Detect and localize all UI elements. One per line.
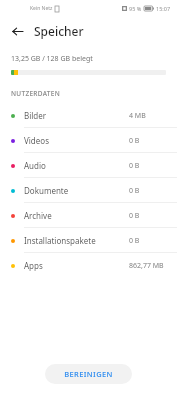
staticText: 4 MB xyxy=(129,111,169,121)
staticText: BEREINIGEN xyxy=(64,369,113,379)
staticText: 13,25 GB / 128 GB belegt xyxy=(11,54,93,64)
staticText: 0 B xyxy=(129,136,169,146)
button[interactable]: Bilder xyxy=(0,103,177,128)
staticText: NUTZERDATEN xyxy=(11,89,60,98)
button[interactable]: Back xyxy=(7,21,27,41)
button[interactable]: Audio xyxy=(0,153,177,178)
staticText: Apps xyxy=(24,260,43,271)
staticText: 95 % xyxy=(129,5,142,12)
staticText: Audio xyxy=(24,160,46,171)
staticText: Archive xyxy=(24,210,52,221)
staticText: 0 B xyxy=(129,211,169,221)
button[interactable]: BEREINIGEN xyxy=(45,364,132,384)
staticText: Videos xyxy=(24,135,49,146)
button[interactable]: Archive xyxy=(0,203,177,228)
staticText: 0 B xyxy=(129,186,169,196)
button[interactable]: Installationspakete xyxy=(0,228,177,253)
staticText: 15:07 xyxy=(156,5,171,12)
staticText: 0 B xyxy=(129,236,169,246)
staticText: Dokumente xyxy=(24,185,69,196)
staticText: 0 B xyxy=(129,161,169,171)
button[interactable]: Apps xyxy=(0,253,177,278)
button[interactable]: Dokumente xyxy=(0,178,177,203)
staticText: Bilder xyxy=(24,110,47,121)
staticText: Kein Netz xyxy=(30,5,53,12)
button[interactable]: Videos xyxy=(0,128,177,153)
staticText: 862,77 MB xyxy=(129,261,169,271)
staticText: Speicher xyxy=(34,23,84,39)
staticText: Installationspakete xyxy=(24,235,96,246)
